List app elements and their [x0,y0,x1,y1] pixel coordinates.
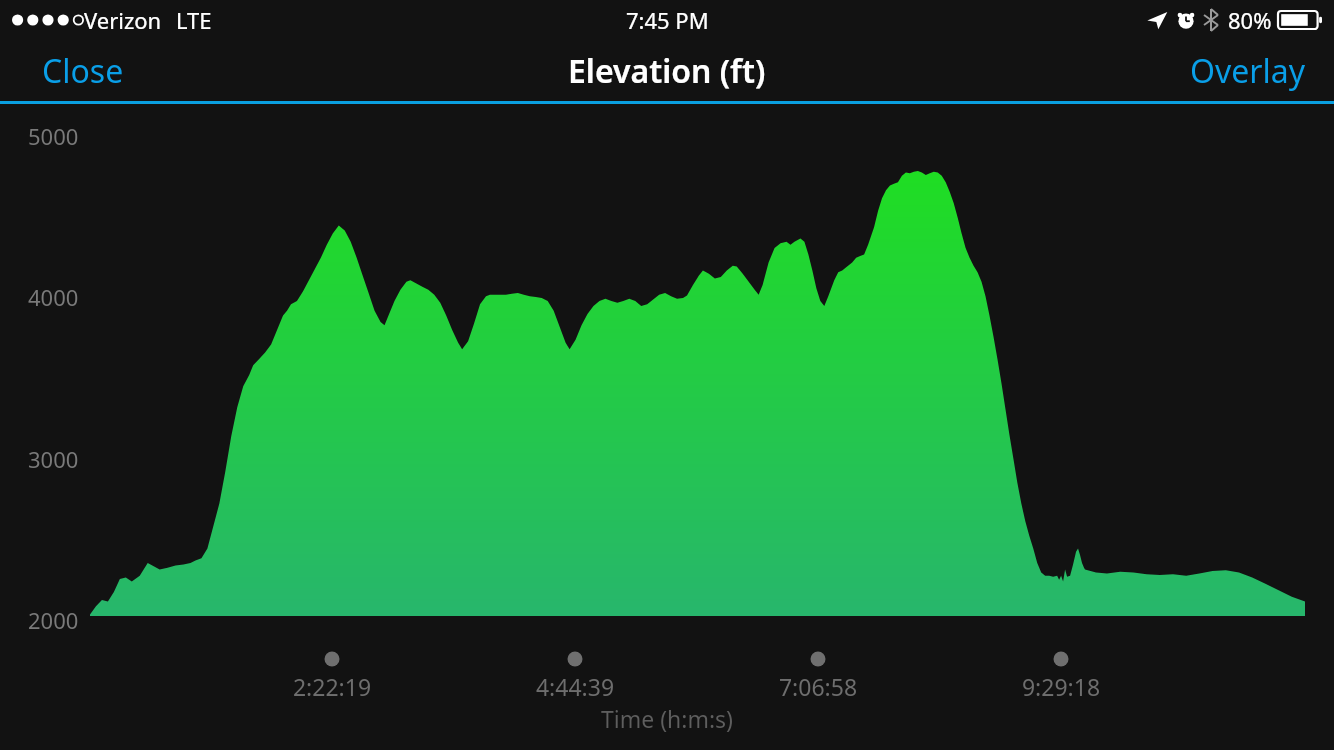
staticText: 2:22:19 [270,671,394,702]
button[interactable]: Overlay [1162,41,1334,101]
staticText: Elevation (ft) [568,49,766,93]
staticText: Time (h:m:s) [0,703,1334,734]
staticText: 2000 [28,605,79,635]
staticText: 9:29:18 [999,671,1123,702]
staticText: 4000 [28,282,79,312]
staticText: 7:45 PM [626,5,709,35]
staticText: 3000 [28,444,79,474]
staticText: 5000 [28,121,79,151]
staticText: 7:06:58 [756,671,880,702]
staticText: Overlay [1190,49,1306,93]
staticText: Close [42,49,124,93]
staticText: 80% [1228,5,1272,35]
staticText: 4:44:39 [513,671,637,702]
staticText: Verizon [84,5,162,35]
staticText: LTE [176,5,212,35]
button[interactable]: Close [0,41,166,101]
